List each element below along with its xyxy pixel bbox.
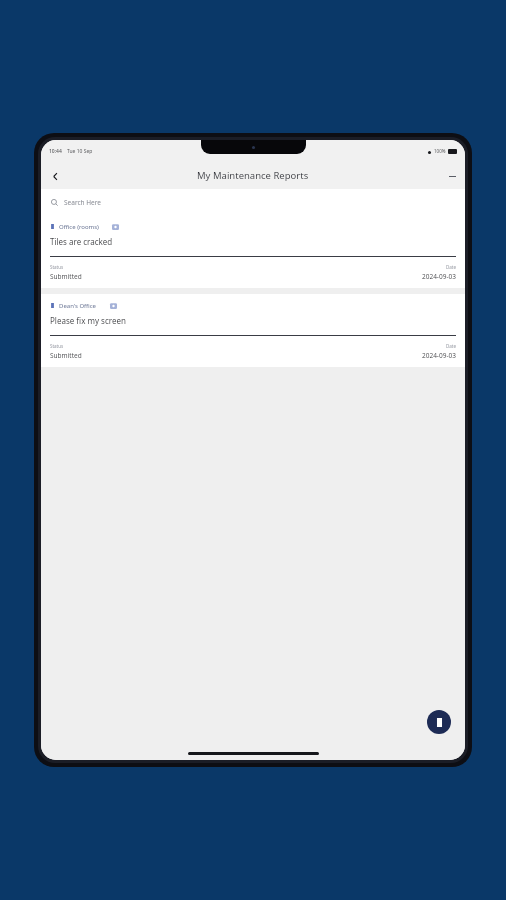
- staticText: Status: [50, 343, 64, 349]
- button[interactable]: More options: [444, 168, 460, 184]
- button[interactable]: Back: [45, 166, 65, 186]
- staticText: Tiles are cracked: [50, 236, 113, 247]
- staticText: Date: [446, 343, 456, 349]
- button[interactable]: Search Here: [41, 189, 465, 215]
- button[interactable]: New report: [427, 710, 451, 734]
- staticText: Dean's Office: [59, 302, 97, 310]
- staticText: My Maintenance Reports: [197, 169, 309, 182]
- button[interactable]: View photo: [109, 301, 118, 310]
- staticText: Date: [446, 264, 456, 270]
- button[interactable]: Dean's Office: [41, 294, 465, 367]
- staticText: 10:44: [49, 148, 62, 155]
- staticText: 100%: [434, 148, 446, 154]
- button[interactable]: Office (rooms): [41, 215, 465, 288]
- staticText: Tue 10 Sep: [67, 148, 93, 155]
- staticText: Office (rooms): [59, 223, 99, 231]
- staticText: Please fix my screen: [50, 315, 126, 326]
- staticText: Submitted: [50, 272, 82, 281]
- staticText: 2024-09-03: [422, 272, 456, 281]
- staticText: Search Here: [64, 198, 101, 207]
- staticText: Status: [50, 264, 64, 270]
- staticText: Submitted: [50, 351, 82, 360]
- button[interactable]: View photo: [111, 222, 120, 231]
- staticText: 2024-09-03: [422, 351, 456, 360]
